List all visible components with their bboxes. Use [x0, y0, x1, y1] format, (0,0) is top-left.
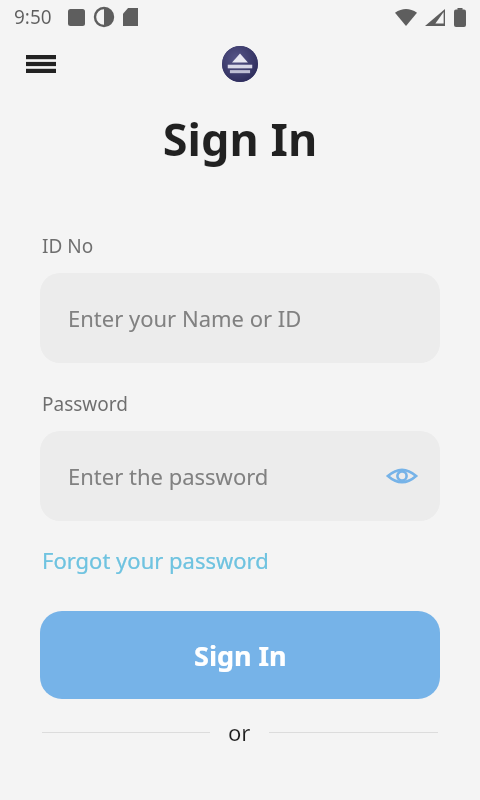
staticText: Password	[42, 391, 128, 417]
other: App logo	[222, 46, 258, 82]
button[interactable]: Enter the password	[40, 431, 440, 521]
staticText: Sign In	[0, 108, 480, 169]
button[interactable]: Sign In	[40, 611, 440, 699]
button[interactable]: Menu	[20, 43, 62, 85]
button[interactable]: Forgot your password	[40, 541, 271, 579]
button[interactable]: Enter your Name or ID	[40, 273, 440, 363]
staticText: Forgot your password	[42, 545, 269, 575]
staticText: Enter the password	[68, 461, 269, 491]
button[interactable]: Show password	[380, 454, 424, 498]
staticText: Sign In	[194, 637, 287, 674]
staticText: ID No	[42, 233, 94, 259]
staticText: Enter your Name or ID	[68, 303, 302, 333]
staticText: 9:50	[14, 4, 52, 30]
staticText: or	[228, 717, 251, 747]
